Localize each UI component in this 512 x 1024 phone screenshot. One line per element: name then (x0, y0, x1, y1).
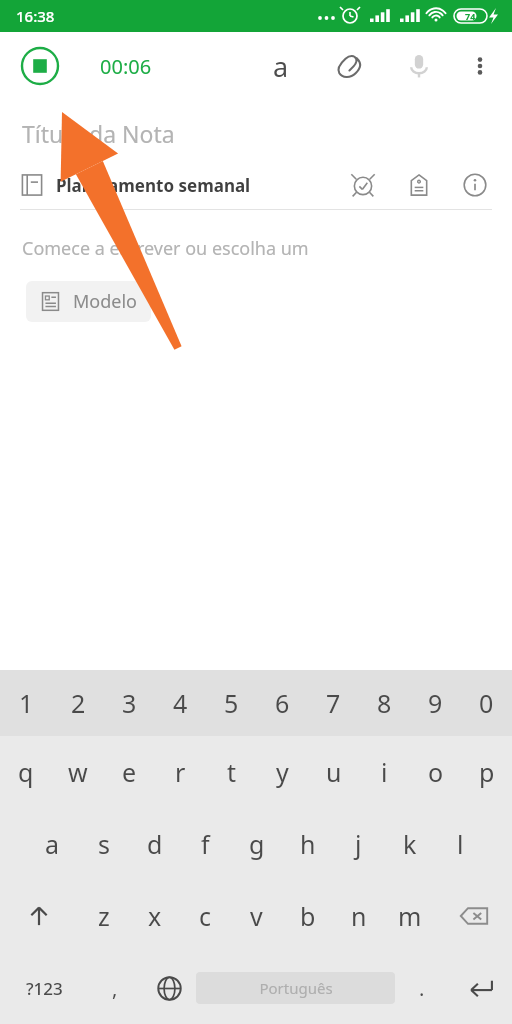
staticText: 4 (173, 686, 188, 720)
button[interactable]: 0 (461, 670, 512, 736)
staticText: Título da Nota (22, 118, 175, 149)
button[interactable]: . (395, 952, 449, 1024)
staticText: i (381, 755, 388, 789)
button[interactable]: y (257, 736, 308, 808)
staticText: Português (259, 978, 333, 998)
button[interactable]: j (333, 808, 384, 880)
button[interactable]: b (282, 880, 333, 952)
staticText: p (479, 755, 495, 789)
staticText: t (227, 755, 237, 789)
staticText: 00:06 (100, 53, 152, 80)
button[interactable]: Change language (142, 952, 196, 1024)
button[interactable]: d (129, 808, 180, 880)
staticText: c (199, 899, 212, 933)
staticText: . (419, 975, 425, 1002)
button[interactable]: Tags (402, 168, 436, 202)
button[interactable]: p (461, 736, 512, 808)
button[interactable]: o (410, 736, 461, 808)
staticText: f (201, 827, 210, 861)
button[interactable]: Modelo (26, 281, 151, 322)
button[interactable]: Enter (449, 952, 512, 1024)
staticText: 0 (479, 686, 494, 720)
staticText: j (355, 827, 362, 861)
button[interactable]: 9 (410, 670, 461, 736)
button[interactable]: 2 (52, 670, 104, 736)
staticText: e (122, 755, 137, 789)
staticText: x (148, 899, 162, 933)
button[interactable]: Stop recording (18, 44, 62, 88)
staticText: d (147, 827, 163, 861)
button[interactable]: 3 (104, 670, 155, 736)
button[interactable]: Shift (0, 880, 78, 952)
staticText: u (326, 755, 342, 789)
staticText: 74 (465, 10, 476, 22)
staticText: 16:38 (16, 6, 55, 26)
staticText: o (428, 755, 444, 789)
button[interactable]: Reminder (346, 168, 380, 202)
button[interactable]: z (78, 880, 129, 952)
staticText: w (68, 755, 88, 789)
staticText: k (403, 827, 417, 861)
staticText: Planejamento semanal (56, 174, 251, 197)
button[interactable]: Attach file (327, 43, 373, 89)
button[interactable]: k (384, 808, 435, 880)
staticText: 8 (377, 686, 392, 720)
button[interactable]: r (155, 736, 206, 808)
staticText: 2 (71, 686, 86, 720)
staticText: , (112, 975, 118, 1002)
button[interactable]: i (359, 736, 410, 808)
staticText: g (249, 827, 265, 861)
button[interactable]: h (282, 808, 333, 880)
button[interactable]: v (231, 880, 282, 952)
staticText: b (300, 899, 316, 933)
button[interactable]: q (0, 736, 52, 808)
button[interactable]: c (180, 880, 231, 952)
button[interactable]: l (435, 808, 486, 880)
button[interactable]: m (384, 880, 435, 952)
staticText: 1 (19, 686, 34, 720)
staticText: 6 (275, 686, 290, 720)
staticText: s (98, 827, 110, 861)
button[interactable]: w (52, 736, 104, 808)
button[interactable]: x (129, 880, 180, 952)
staticText: n (351, 899, 367, 933)
button[interactable]: Planejamento semanal (0, 162, 512, 208)
button[interactable]: 4 (155, 670, 206, 736)
button[interactable]: Backspace (435, 880, 512, 952)
button[interactable]: Português (196, 972, 395, 1004)
button[interactable]: e (104, 736, 155, 808)
button[interactable]: , (88, 952, 142, 1024)
button[interactable]: a (27, 808, 78, 880)
button[interactable]: Text formatting (258, 43, 304, 89)
button[interactable]: ?123 (0, 952, 88, 1024)
button[interactable]: Voice input (396, 43, 442, 89)
button[interactable]: t (206, 736, 257, 808)
staticText: 3 (122, 686, 137, 720)
button[interactable]: 1 (0, 670, 52, 736)
staticText: ?123 (26, 977, 63, 1000)
button[interactable]: 5 (206, 670, 257, 736)
staticText: 5 (224, 686, 239, 720)
staticText: q (18, 755, 34, 789)
staticText: a (45, 827, 60, 861)
staticText: y (276, 755, 289, 789)
button[interactable]: u (308, 736, 359, 808)
button[interactable]: f (180, 808, 231, 880)
button[interactable]: g (231, 808, 282, 880)
button[interactable]: s (78, 808, 129, 880)
button[interactable]: 8 (359, 670, 410, 736)
button[interactable]: 6 (257, 670, 308, 736)
staticText: r (175, 755, 186, 789)
staticText: m (398, 899, 422, 933)
button[interactable]: Info (458, 168, 492, 202)
staticText: v (250, 899, 263, 933)
staticText: 7 (326, 686, 341, 720)
staticText: 9 (428, 686, 443, 720)
staticText: l (457, 827, 464, 861)
staticText: h (300, 827, 316, 861)
button[interactable]: More options (458, 44, 502, 88)
button[interactable]: n (333, 880, 384, 952)
staticText: Comece a escrever ou escolha um (22, 236, 309, 261)
button[interactable]: 7 (308, 670, 359, 736)
staticText: z (98, 899, 110, 933)
